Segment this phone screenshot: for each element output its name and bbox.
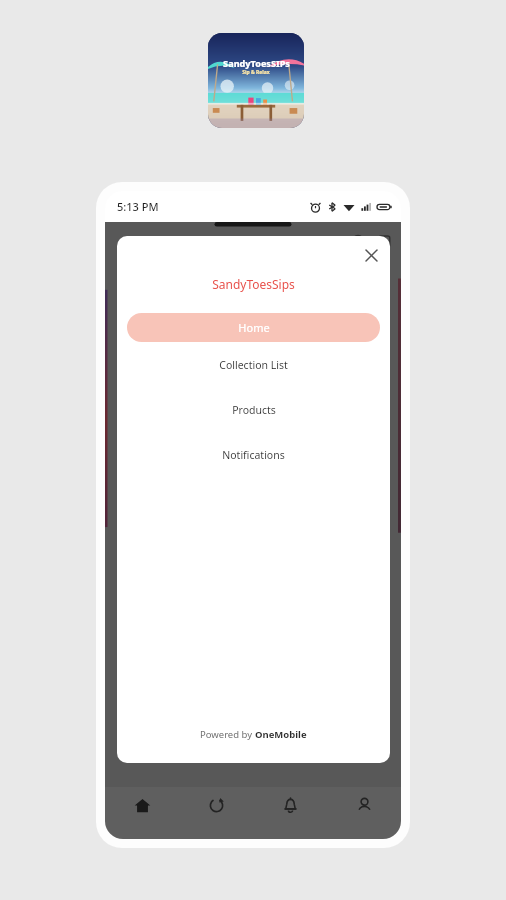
staticText: Powered by: [200, 728, 255, 741]
staticText: Sip & Relax: [242, 69, 270, 76]
staticText: SandyToesSips: [212, 276, 295, 292]
staticText: Products: [232, 403, 276, 417]
button[interactable]: Close: [358, 242, 384, 268]
staticText: Collection List: [219, 358, 288, 372]
other: Alarm: [310, 202, 321, 213]
staticText: 5:13 PM: [117, 199, 159, 214]
button[interactable]: Notifications: [117, 432, 390, 477]
button[interactable]: Home: [127, 313, 380, 342]
button[interactable]: Refresh: [179, 787, 253, 839]
other: Battery: [377, 202, 392, 212]
other: Signal: [361, 202, 371, 212]
button[interactable]: Home: [105, 787, 179, 839]
other: Bluetooth: [327, 202, 337, 212]
staticText: Home: [238, 320, 270, 335]
staticText: OneMobile: [255, 728, 307, 741]
button[interactable]: Profile: [327, 787, 401, 839]
button[interactable]: Collection List: [117, 342, 390, 387]
button[interactable]: Notifications: [253, 787, 327, 839]
staticText: Notifications: [222, 448, 285, 462]
other: Wi-Fi: [343, 201, 355, 213]
staticText: SandyToesSIPs: [223, 57, 290, 69]
button[interactable]: Products: [117, 387, 390, 432]
